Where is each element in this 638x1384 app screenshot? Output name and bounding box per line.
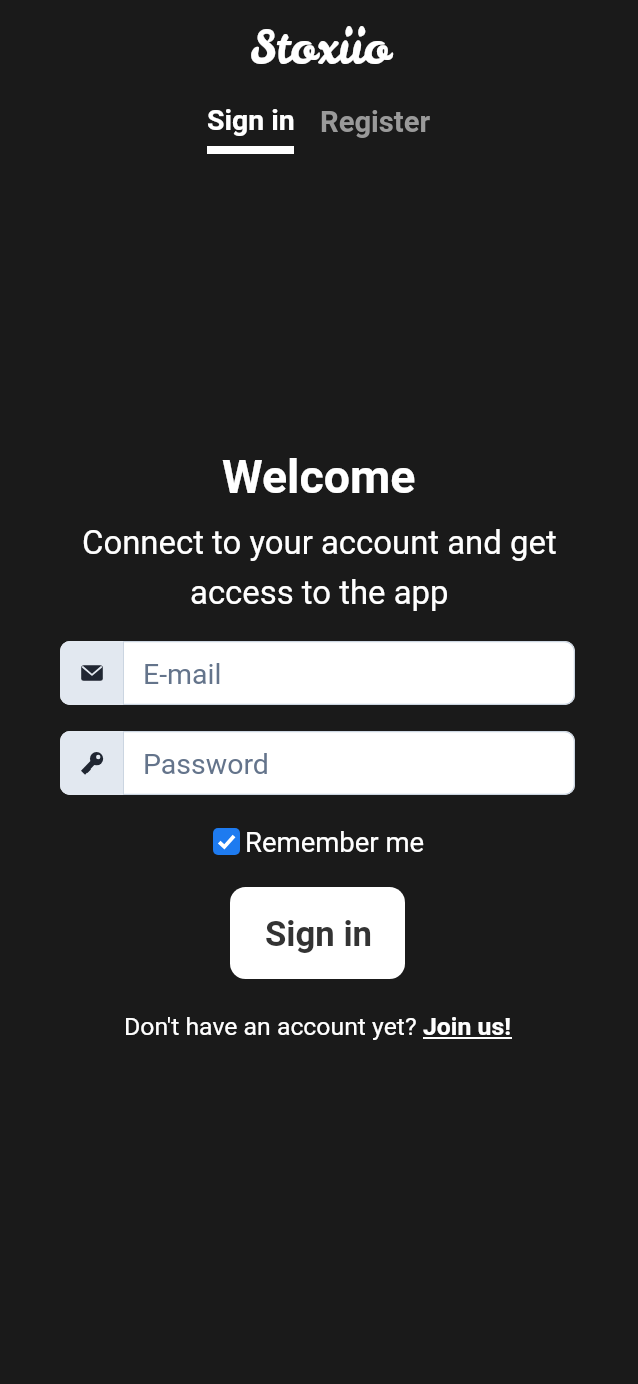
staticText: Don't have an account yet? (124, 1012, 423, 1041)
button[interactable]: Join us! (423, 1012, 512, 1041)
staticText: Join us! (423, 1012, 511, 1041)
button[interactable]: Register (320, 105, 431, 139)
staticText: Password (143, 748, 269, 781)
staticText: Sign in (207, 104, 294, 137)
staticText: Register (320, 105, 431, 139)
staticText: Welcome (222, 450, 416, 504)
staticText: Remember me (245, 826, 425, 856)
staticText: Stoxiio (250, 15, 389, 79)
button[interactable]: Remember me (213, 825, 422, 855)
button[interactable]: Email (60, 641, 575, 705)
staticText: Connect to your account and get (82, 523, 557, 562)
other: Password (60, 731, 123, 795)
staticText: Sign in (265, 914, 373, 955)
staticText: access to the app (190, 573, 449, 612)
button[interactable]: Password (60, 731, 575, 795)
button[interactable]: Sign in (207, 104, 294, 153)
staticText: E-mail (143, 658, 222, 691)
button[interactable]: Sign in (230, 887, 405, 979)
other: Email (60, 641, 123, 705)
